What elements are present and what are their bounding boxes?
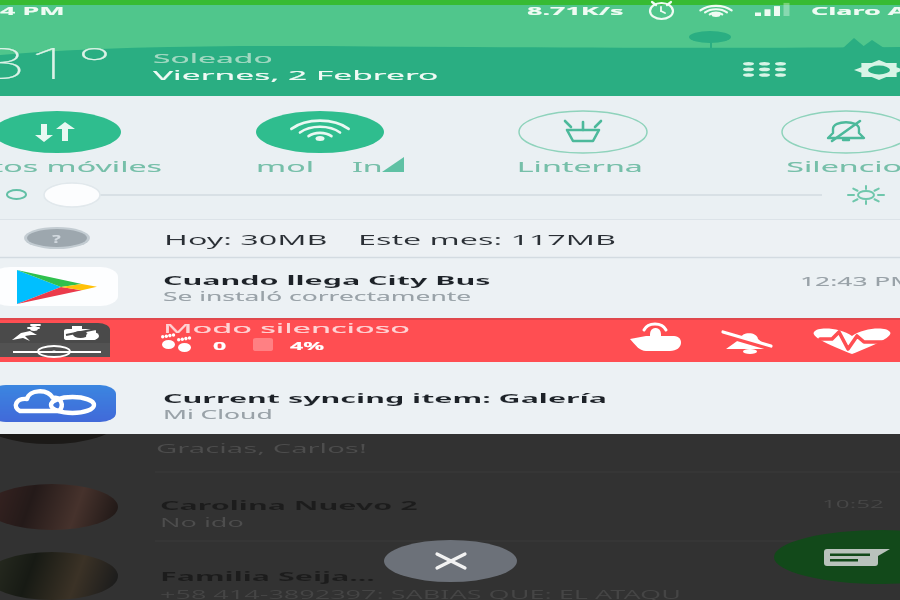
button[interactable]: Notificación: Current syncing item Galer… xyxy=(0,362,900,434)
button[interactable]: Uso de datos: Hoy 30MB, Este mes 117MB xyxy=(0,219,900,257)
button[interactable]: Silencio xyxy=(715,100,900,180)
button[interactable]: Notificación: Cuando llega City Bus xyxy=(0,257,900,318)
button[interactable]: Editar accesos directos xyxy=(736,54,806,88)
button[interactable]: Ajustes xyxy=(852,54,900,88)
button[interactable]: Modo silencioso xyxy=(0,318,900,362)
button[interactable]: Nuevo mensaje xyxy=(774,530,900,584)
button[interactable]: Chat Familia Seija xyxy=(0,542,380,600)
button[interactable]: Datos móviles xyxy=(0,100,142,180)
button[interactable]: Información del tiempo: 31 grados, Solea… xyxy=(0,30,450,94)
button[interactable]: Brillo de pantalla xyxy=(0,181,900,219)
button[interactable]: Wi-Fi xyxy=(189,100,451,180)
button[interactable]: Cerrar panel de notificaciones xyxy=(384,540,517,582)
button[interactable]: Chat Carolina Nuevo 2 xyxy=(0,476,900,538)
button[interactable]: Linterna xyxy=(452,100,714,180)
